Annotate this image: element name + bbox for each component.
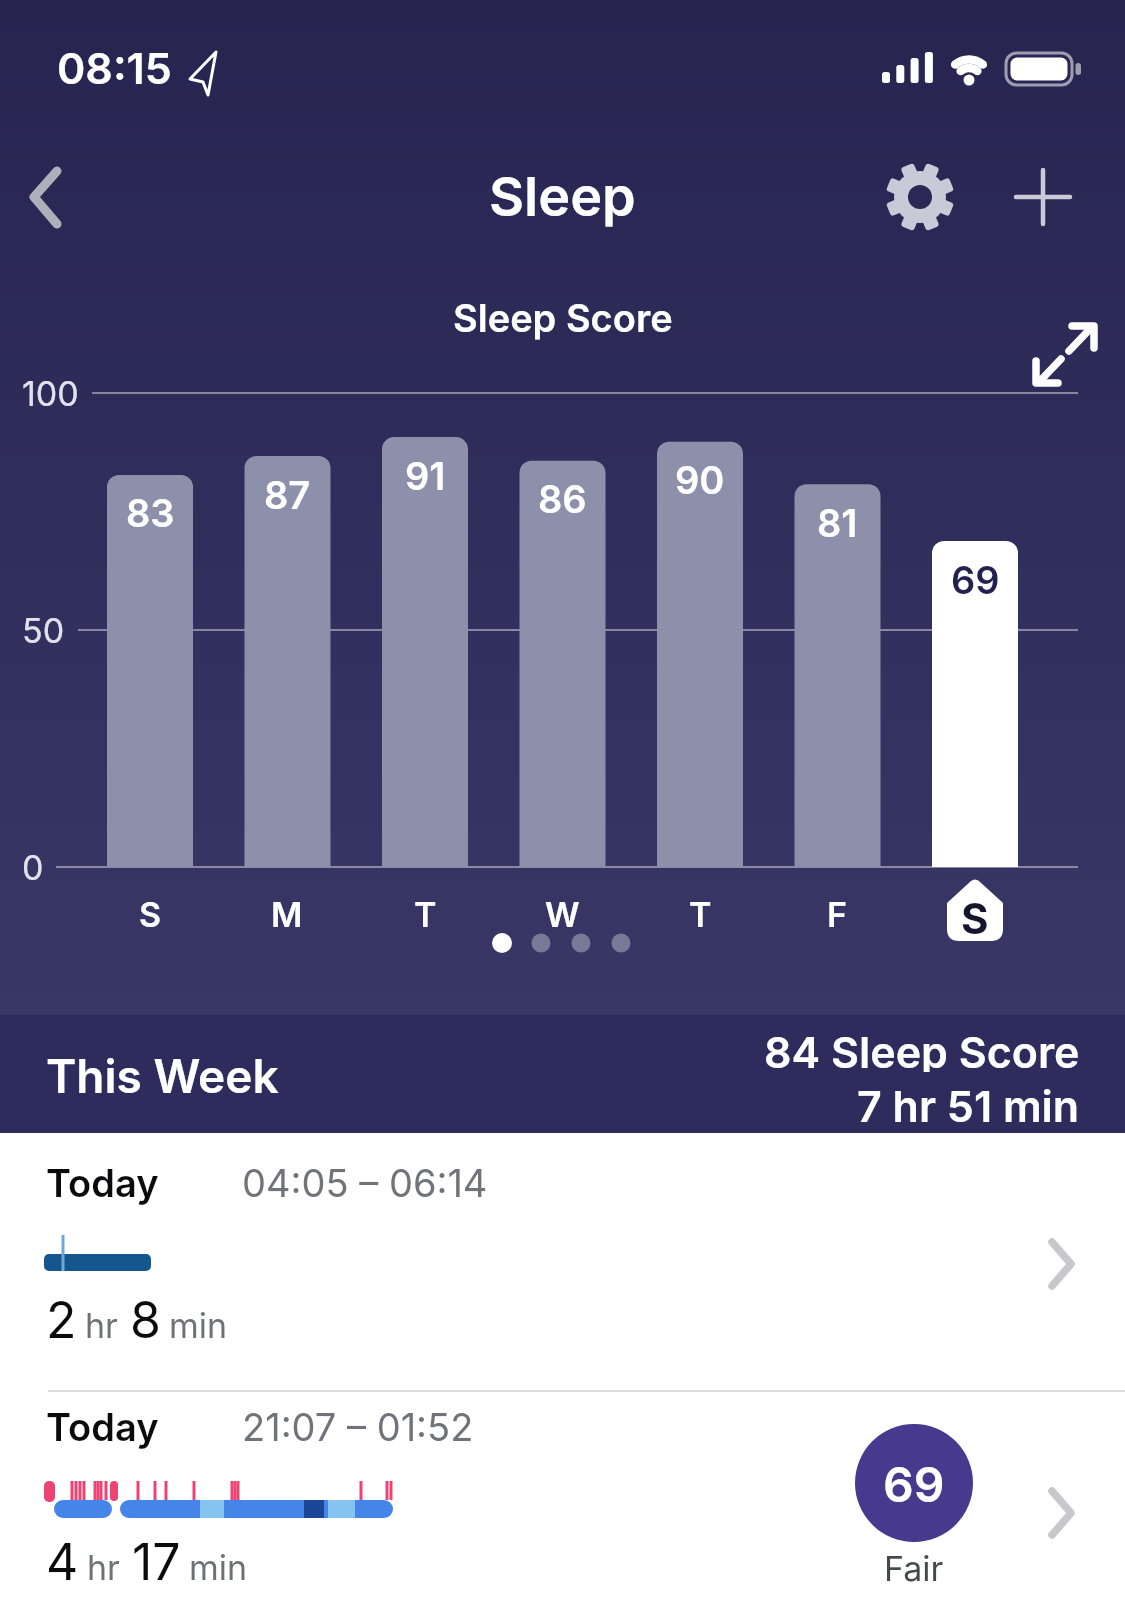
staticText: F bbox=[827, 894, 847, 935]
staticText: 17 bbox=[132, 1532, 181, 1592]
staticText: 69 bbox=[951, 557, 1000, 603]
staticText: 91 bbox=[405, 453, 446, 499]
staticText: T bbox=[689, 894, 712, 935]
button[interactable] bbox=[1028, 314, 1102, 390]
staticText: M bbox=[271, 894, 303, 935]
staticText: This Week bbox=[46, 1048, 279, 1100]
staticText: min bbox=[169, 1305, 228, 1346]
staticText: 50 bbox=[22, 610, 65, 651]
button[interactable] bbox=[884, 160, 956, 234]
staticText: Today bbox=[46, 1404, 159, 1450]
staticText: S bbox=[961, 893, 989, 944]
staticText: 87 bbox=[264, 472, 311, 518]
button[interactable] bbox=[1010, 164, 1076, 230]
staticText: hr bbox=[85, 1305, 118, 1346]
staticText: 100 bbox=[22, 373, 79, 414]
staticText: Sleep Score bbox=[453, 295, 673, 341]
staticText: 7 hr 51 min bbox=[857, 1080, 1080, 1126]
staticText: 08:15 bbox=[57, 42, 172, 94]
staticText: 83 bbox=[126, 490, 175, 536]
staticText: 81 bbox=[817, 500, 858, 546]
button[interactable] bbox=[20, 160, 80, 240]
staticText: 2 bbox=[46, 1290, 77, 1350]
staticText: S bbox=[139, 894, 162, 935]
staticText: Today bbox=[46, 1160, 159, 1206]
staticText: T bbox=[414, 894, 437, 935]
staticText: Sleep bbox=[489, 164, 636, 229]
staticText: 84 Sleep Score bbox=[764, 1026, 1080, 1072]
button[interactable] bbox=[0, 1393, 1125, 1620]
staticText: 69 bbox=[883, 1455, 945, 1511]
staticText: 86 bbox=[538, 476, 587, 522]
staticText: hr bbox=[87, 1547, 120, 1588]
staticText: 4 bbox=[46, 1532, 79, 1592]
staticText: min bbox=[189, 1547, 248, 1588]
staticText: 90 bbox=[675, 457, 725, 503]
button[interactable] bbox=[0, 1133, 1125, 1391]
staticText: 04:05 – 06:14 bbox=[242, 1160, 488, 1206]
staticText: W bbox=[545, 894, 580, 935]
staticText: 8 bbox=[130, 1290, 161, 1350]
staticText: 21:07 – 01:52 bbox=[242, 1404, 474, 1450]
staticText: 0 bbox=[22, 847, 44, 888]
staticText: Fair bbox=[884, 1548, 944, 1589]
